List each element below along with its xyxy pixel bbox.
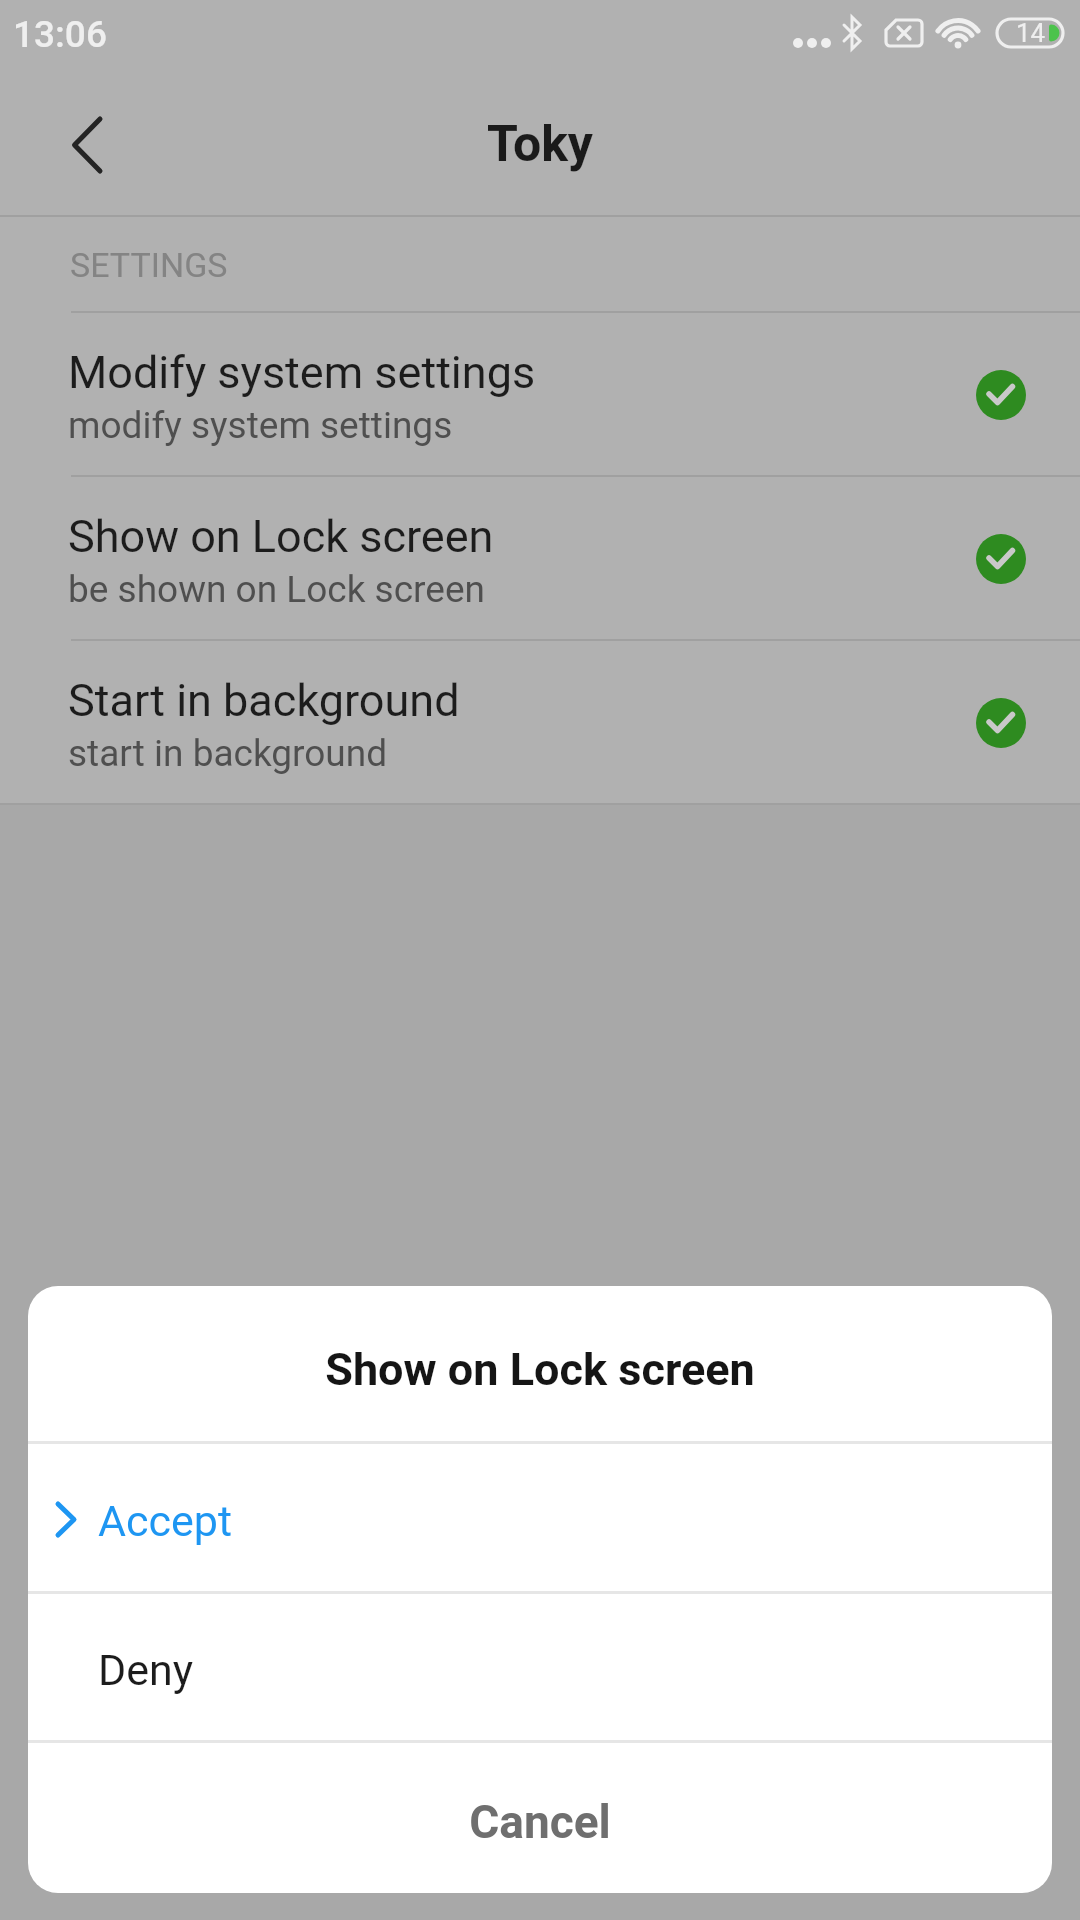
button[interactable]: Show on Lock screen [0, 477, 1080, 641]
staticText: Deny [98, 1645, 194, 1695]
staticText: SETTINGS [70, 245, 228, 285]
staticText: Accept [98, 1496, 233, 1546]
staticText: Modify system settings [68, 346, 536, 399]
staticText: modify system settings [68, 404, 453, 447]
staticText: Toky [0, 115, 1080, 174]
staticText: Cancel [28, 1795, 1052, 1849]
staticText: Show on Lock screen [68, 510, 494, 563]
button[interactable]: Cancel [28, 1743, 1052, 1893]
button[interactable]: Deny [28, 1594, 1052, 1740]
staticText: start in background [68, 732, 388, 775]
staticText: Show on Lock screen [28, 1343, 1052, 1396]
button[interactable]: Accept [28, 1444, 1052, 1591]
staticText: be shown on Lock screen [68, 568, 485, 611]
staticText: 13:06 [13, 13, 107, 56]
staticText: Start in background [68, 674, 460, 727]
button[interactable] [40, 95, 140, 195]
button[interactable]: Start in background [0, 641, 1080, 805]
staticText: 14 [1016, 18, 1046, 48]
button[interactable]: Modify system settings [0, 313, 1080, 477]
